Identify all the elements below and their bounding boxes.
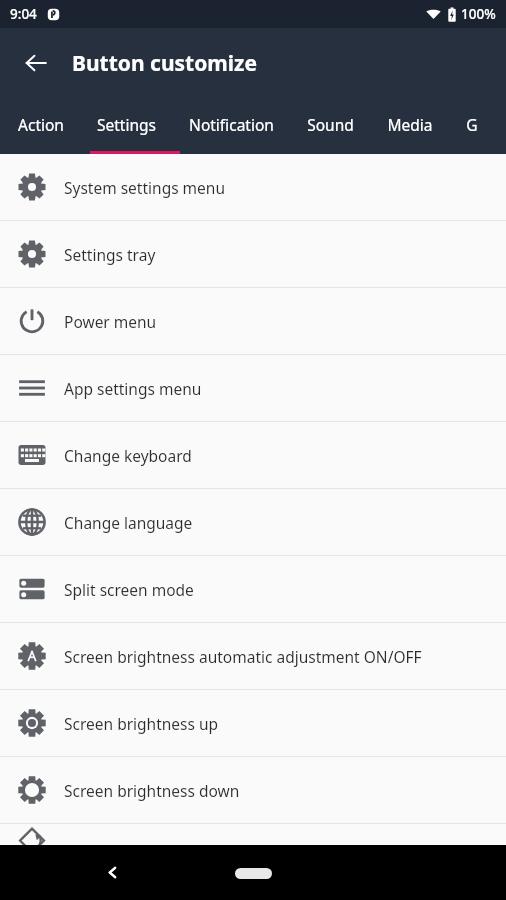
staticText: Power menu xyxy=(64,311,157,332)
button[interactable]: Action xyxy=(18,98,64,151)
button[interactable]: Media xyxy=(387,98,433,151)
staticText: Change language xyxy=(64,512,193,533)
button[interactable]: Notification xyxy=(189,98,274,151)
staticText: Settings xyxy=(97,114,156,135)
button[interactable]: Screen rotation xyxy=(0,824,506,845)
button[interactable]: App settings menu xyxy=(0,355,506,421)
button[interactable]: Back xyxy=(0,28,72,98)
staticText: Screen brightness down xyxy=(64,780,240,801)
staticText: System settings menu xyxy=(64,177,226,198)
button[interactable]: Change language xyxy=(0,489,506,555)
button[interactable]: Change keyboard xyxy=(0,422,506,488)
staticText: 100% xyxy=(461,5,496,23)
button[interactable]: System settings menu xyxy=(0,154,506,220)
button[interactable]: Power menu xyxy=(0,288,506,354)
staticText: Screen brightness up xyxy=(64,713,219,734)
button[interactable]: Screen brightness up xyxy=(0,690,506,756)
staticText: G xyxy=(466,114,478,135)
staticText: Media xyxy=(387,114,433,135)
button[interactable]: Settings xyxy=(97,98,156,151)
staticText: Screen brightness automatic adjustment O… xyxy=(64,646,422,667)
button[interactable]: Screen brightness down xyxy=(0,757,506,823)
staticText: App settings menu xyxy=(64,378,202,399)
staticText: Sound xyxy=(307,114,354,135)
staticText: Notification xyxy=(189,114,274,135)
staticText: Settings tray xyxy=(64,244,156,265)
button[interactable]: Home xyxy=(223,858,283,888)
button[interactable]: Sound xyxy=(307,98,354,151)
button[interactable]: Screen brightness automatic adjustment O… xyxy=(0,623,506,689)
button[interactable]: G xyxy=(466,98,478,151)
staticText: 9:04 xyxy=(10,5,37,23)
button[interactable]: Settings tray xyxy=(0,221,506,287)
staticText: Action xyxy=(18,114,64,135)
staticText: Button customize xyxy=(72,49,257,78)
staticText: Split screen mode xyxy=(64,579,194,600)
button[interactable]: Back xyxy=(84,845,140,900)
button[interactable]: Split screen mode xyxy=(0,556,506,622)
staticText: Change keyboard xyxy=(64,445,192,466)
